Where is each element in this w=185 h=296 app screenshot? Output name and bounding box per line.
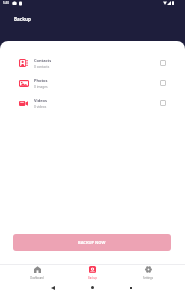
button[interactable]: Select Videos xyxy=(160,100,166,106)
staticText: BACKUP NOW xyxy=(78,240,106,245)
button[interactable]: Select Photos xyxy=(160,80,166,86)
staticText: 0 images xyxy=(34,85,48,89)
staticText: Photos xyxy=(34,78,48,83)
staticText: Videos xyxy=(34,98,47,103)
other: Back xyxy=(51,286,55,290)
button[interactable]: BACKUP NOW xyxy=(13,234,171,251)
button[interactable]: Dashboard xyxy=(17,266,57,282)
other: Home xyxy=(91,286,94,289)
staticText: 0 contacts xyxy=(34,65,50,69)
button[interactable]: Videos xyxy=(0,93,185,114)
button[interactable]: Backup xyxy=(72,266,112,282)
staticText: Contacts xyxy=(34,58,52,63)
staticText: Settings xyxy=(143,276,153,280)
staticText: Backup xyxy=(14,16,31,22)
staticText: Dashboard xyxy=(30,276,44,280)
button[interactable]: Contacts xyxy=(0,53,185,74)
staticText: 5:30 xyxy=(3,1,9,5)
staticText: 0 videos xyxy=(34,105,47,109)
button[interactable]: Settings xyxy=(128,266,168,282)
button[interactable]: Photos xyxy=(0,73,185,94)
button[interactable]: Select Contacts xyxy=(160,60,166,66)
staticText: Backup xyxy=(88,276,97,280)
